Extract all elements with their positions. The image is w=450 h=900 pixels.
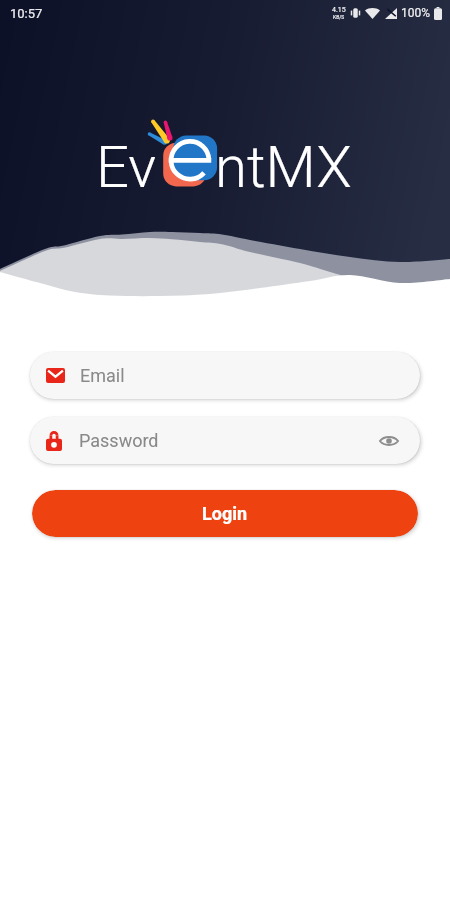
staticText: KB/S xyxy=(333,14,345,20)
button[interactable]: Password xyxy=(30,417,420,464)
staticText: 100% xyxy=(401,6,431,20)
staticText: Email xyxy=(80,365,125,386)
button[interactable]: Login xyxy=(32,490,418,537)
staticText: 10:57 xyxy=(10,6,43,21)
staticText: Password xyxy=(79,430,159,451)
staticText: 4.15 xyxy=(332,6,346,14)
button[interactable]: Email xyxy=(30,352,420,399)
staticText: Ev xyxy=(96,133,157,201)
button[interactable]: Show password xyxy=(376,428,402,454)
staticText: Login xyxy=(202,503,248,524)
staticText: ntMX xyxy=(215,133,352,201)
